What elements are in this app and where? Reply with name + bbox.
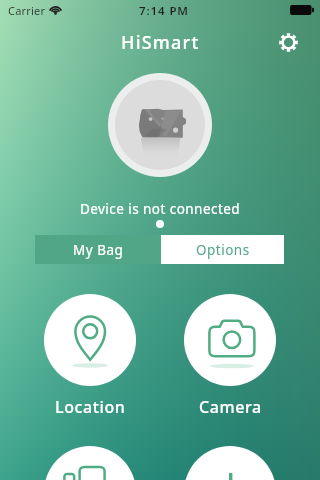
button[interactable]: Phone: [44, 446, 136, 480]
staticText: Camera: [199, 396, 262, 418]
button[interactable]: Camera: [184, 294, 276, 386]
staticText: HiSmart: [121, 30, 200, 55]
button[interactable]: Statistics: [184, 446, 276, 480]
staticText: Carrier: [8, 3, 46, 18]
button[interactable]: Device: [108, 73, 212, 177]
staticText: Device is not connected: [0, 200, 320, 218]
button[interactable]: My Bag: [35, 235, 161, 264]
button[interactable]: Options: [161, 235, 284, 264]
button[interactable]: Settings: [279, 33, 298, 52]
staticText: Location: [55, 396, 126, 418]
button[interactable]: Location: [44, 294, 136, 386]
staticText: Options: [196, 241, 250, 259]
staticText: 7:14 PM: [139, 3, 189, 19]
staticText: My Bag: [73, 241, 124, 259]
